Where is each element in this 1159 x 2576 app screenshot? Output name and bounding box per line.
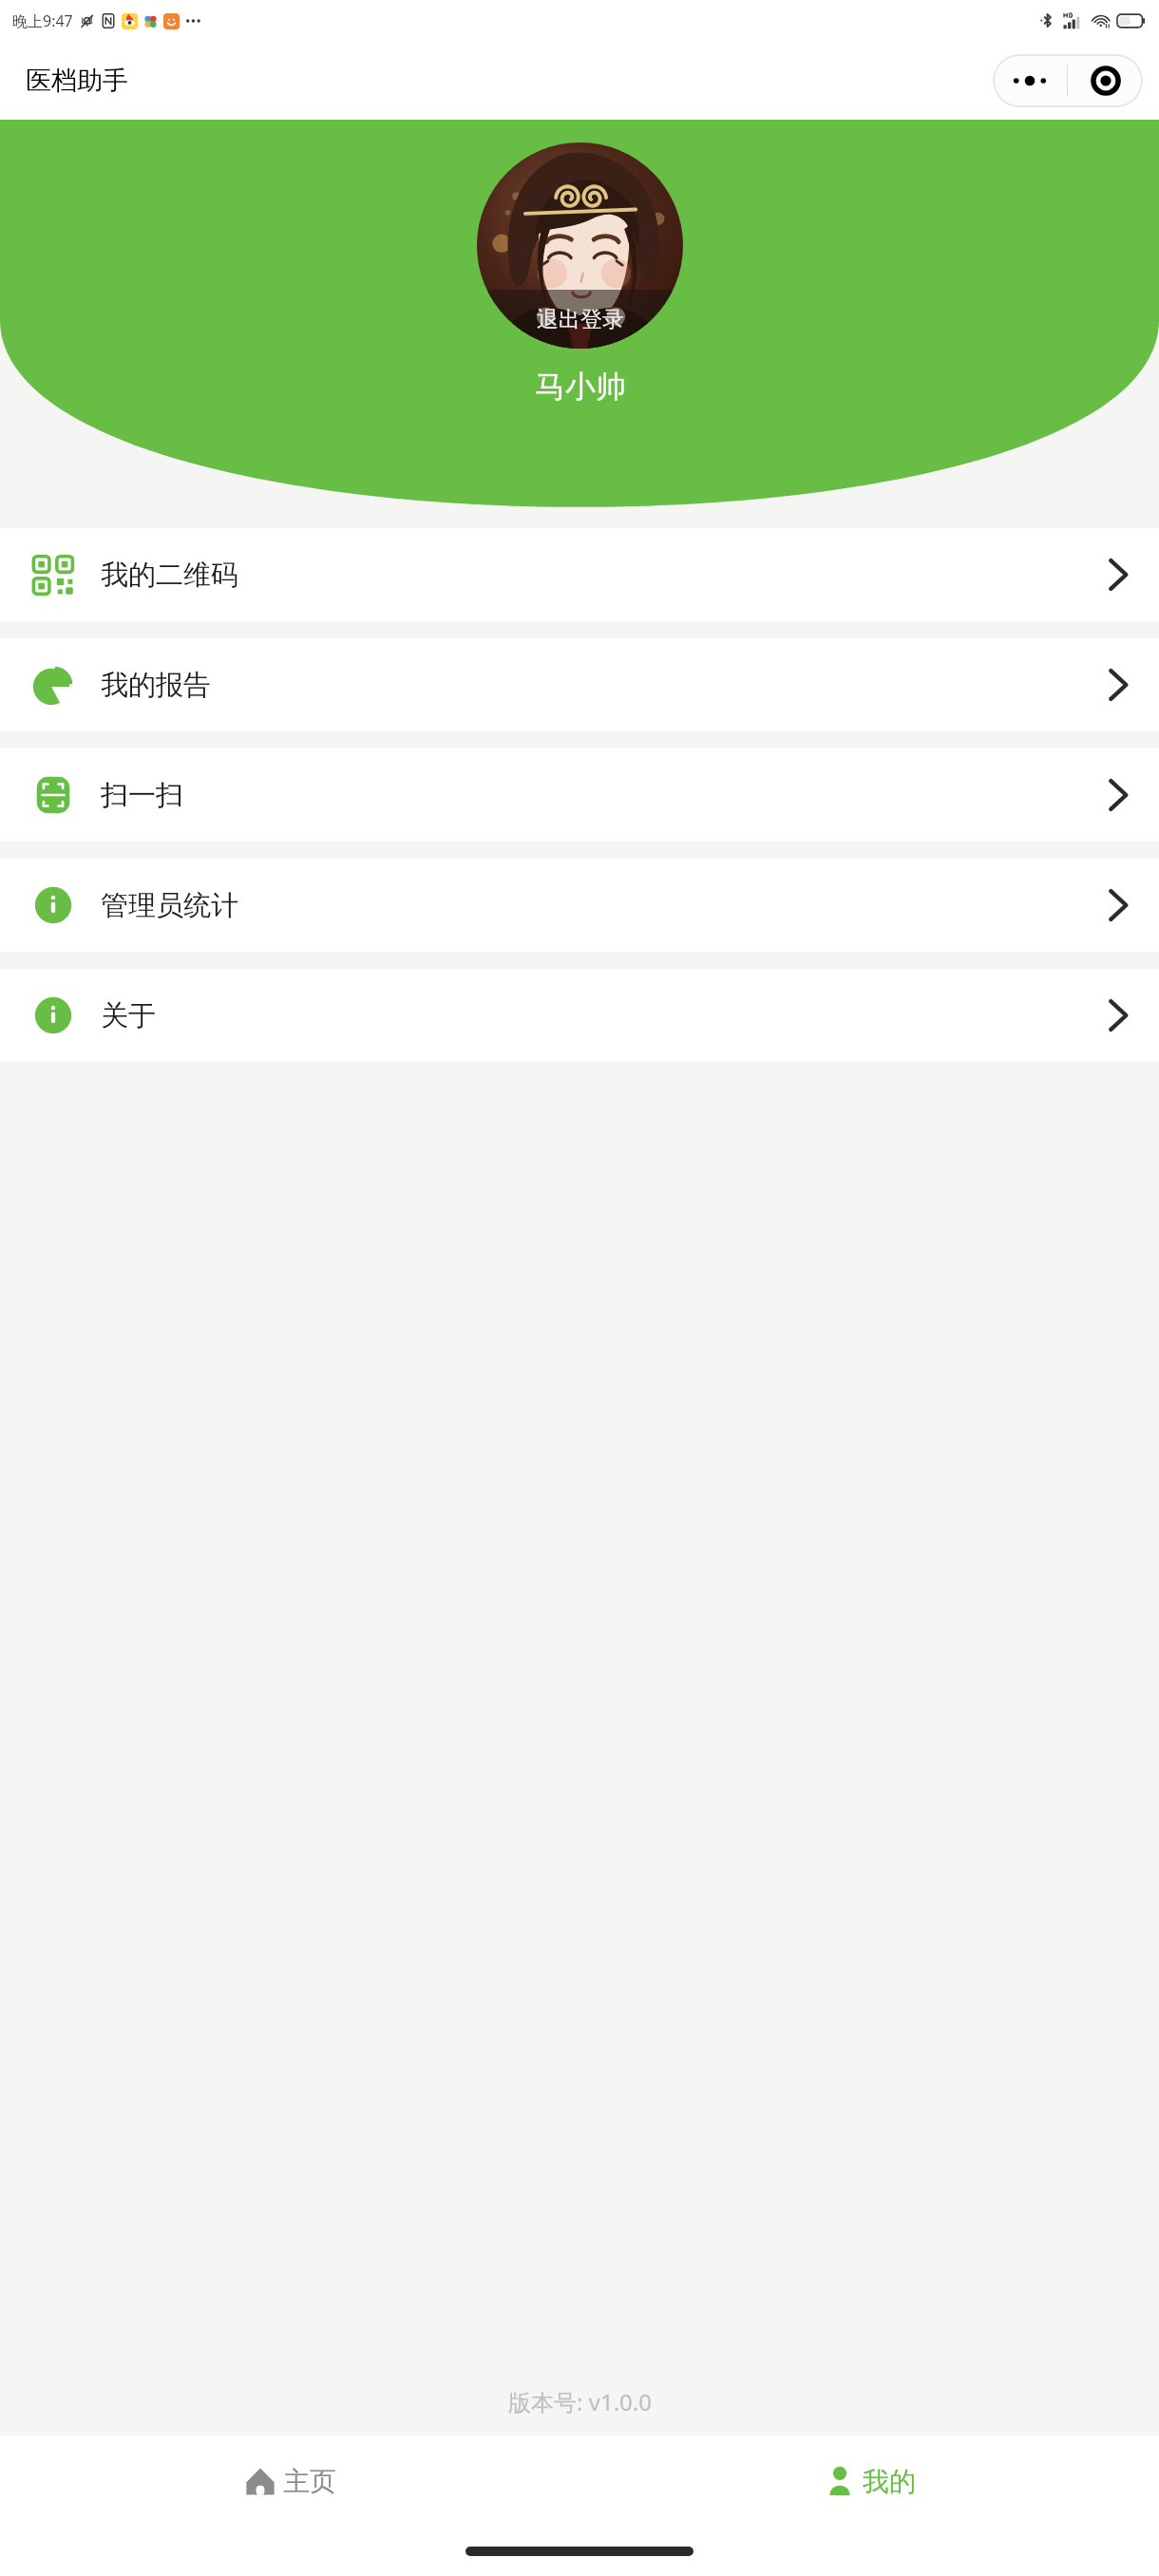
staticText: 晚上9:47 (12, 10, 73, 31)
button[interactable]: More (993, 54, 1067, 107)
staticText: 关于 (101, 998, 156, 1033)
button[interactable]: Close mini program (1068, 54, 1143, 107)
staticText: 扫一扫 (101, 778, 183, 813)
button[interactable]: 扫一扫 (0, 748, 1159, 842)
staticText: 我的 (863, 2465, 916, 2498)
button[interactable]: 我的报告 (0, 638, 1159, 731)
button[interactable]: 主页 (0, 2435, 579, 2527)
button[interactable]: 退出登录 (477, 142, 683, 349)
button[interactable]: 关于 (0, 969, 1159, 1062)
staticText: 主页 (283, 2465, 336, 2498)
staticText: 管理员统计 (101, 888, 238, 923)
staticText: 我的报告 (101, 668, 211, 703)
staticText: 医档助手 (26, 65, 128, 97)
button[interactable]: 我的 (579, 2435, 1159, 2527)
button[interactable]: 管理员统计 (0, 859, 1159, 952)
staticText: 版本号: v1.0.0 (508, 2386, 652, 2417)
button[interactable]: 我的二维码 (0, 528, 1159, 621)
staticText: 退出登录 (537, 306, 624, 333)
staticText: 马小帅 (535, 368, 626, 406)
staticText: 我的二维码 (101, 558, 238, 593)
